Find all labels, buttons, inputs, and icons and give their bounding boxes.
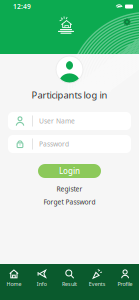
button[interactable]: Events — [83, 264, 111, 300]
staticText: 12:49 — [13, 2, 31, 11]
button[interactable]: Home — [0, 264, 28, 300]
staticText: Register — [56, 185, 82, 193]
button[interactable]: Settings — [120, 15, 134, 29]
button[interactable]: Register — [56, 184, 82, 194]
staticText: Login — [59, 166, 80, 176]
button[interactable]: Forget Password — [43, 197, 95, 207]
staticText: Events — [89, 280, 106, 288]
staticText: Home — [6, 280, 21, 288]
staticText: User Name — [39, 117, 75, 125]
staticText: Info — [37, 280, 47, 288]
button[interactable]: Result — [56, 264, 83, 300]
staticText: Profile — [118, 280, 133, 288]
button[interactable]: Login — [38, 164, 101, 178]
button[interactable]: Profile — [111, 264, 139, 300]
staticText: Participants log in — [31, 89, 107, 101]
staticText: Password — [39, 140, 69, 148]
button[interactable]: Info — [28, 264, 56, 300]
staticText: Forget Password — [43, 198, 95, 206]
staticText: Result — [62, 280, 77, 288]
